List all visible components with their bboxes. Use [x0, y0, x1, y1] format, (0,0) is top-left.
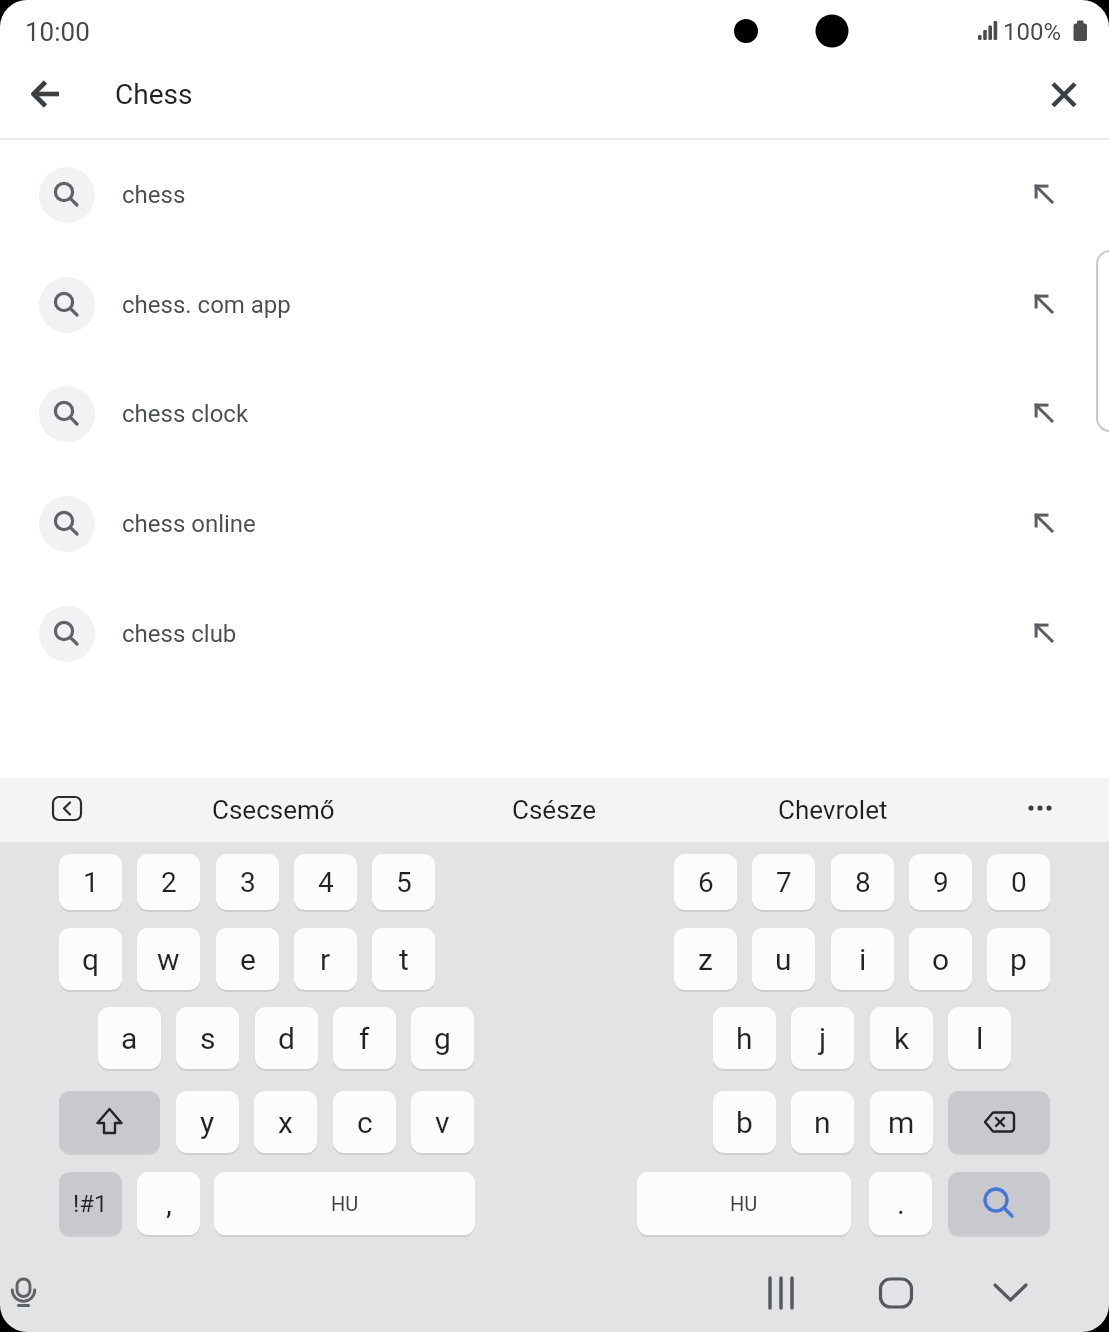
staticText: u	[775, 942, 792, 977]
staticText: 9	[933, 866, 949, 899]
button[interactable]	[1016, 788, 1064, 828]
staticText: Chess	[115, 78, 193, 111]
staticText: 1	[83, 866, 99, 899]
staticText: a	[121, 1021, 138, 1056]
staticText: chess. com app	[122, 291, 291, 319]
staticText: 10:00	[25, 17, 90, 47]
button[interactable]	[0, 360, 1109, 468]
button[interactable]: l	[948, 1007, 1011, 1069]
staticText: chess clock	[122, 400, 249, 428]
staticText: w	[157, 942, 180, 977]
staticText: v	[435, 1105, 450, 1140]
button[interactable]: i	[831, 928, 894, 990]
staticText: n	[814, 1105, 831, 1140]
button[interactable]: Csésze	[429, 780, 679, 840]
button[interactable]	[0, 251, 1109, 359]
button[interactable]: f	[333, 1007, 396, 1069]
button[interactable]: 0	[987, 854, 1050, 910]
staticText: 6	[698, 866, 714, 899]
button[interactable]: 3	[216, 854, 279, 910]
staticText: x	[278, 1105, 293, 1140]
button[interactable]: o	[909, 928, 972, 990]
button[interactable]: n	[791, 1091, 854, 1153]
button[interactable]: s	[176, 1007, 239, 1069]
button[interactable]: x	[254, 1091, 317, 1153]
staticText: z	[698, 942, 713, 977]
button[interactable]: Csecsemő	[148, 780, 398, 840]
button[interactable]: ,	[137, 1172, 200, 1235]
button[interactable]	[0, 470, 1109, 578]
staticText: q	[82, 942, 100, 977]
staticText: Chevrolet	[778, 795, 888, 825]
staticText: !#1	[73, 1190, 108, 1218]
staticText: s	[200, 1021, 216, 1056]
button[interactable]: 6	[674, 854, 737, 910]
button[interactable]: y	[176, 1091, 239, 1153]
staticText: 7	[776, 866, 792, 899]
staticText: h	[736, 1021, 753, 1056]
button[interactable]: g	[411, 1007, 474, 1069]
button[interactable]: z	[674, 928, 737, 990]
staticText: d	[278, 1021, 295, 1056]
button[interactable]: q	[59, 928, 122, 990]
button[interactable]	[948, 1091, 1050, 1153]
button[interactable]: Chevrolet	[708, 780, 958, 840]
button[interactable]: 9	[909, 854, 972, 910]
staticText: e	[240, 942, 256, 977]
button[interactable]	[59, 1091, 160, 1153]
button[interactable]: u	[752, 928, 815, 990]
staticText: c	[357, 1105, 373, 1140]
staticText: o	[932, 942, 950, 977]
staticText: k	[894, 1021, 910, 1056]
button[interactable]: w	[137, 928, 200, 990]
button[interactable]: HU	[214, 1172, 475, 1235]
button[interactable]: b	[713, 1091, 776, 1153]
button[interactable]	[866, 1263, 926, 1323]
staticText: 0	[1011, 866, 1027, 899]
staticText: HU	[730, 1192, 758, 1215]
button[interactable]	[0, 580, 1109, 688]
button[interactable]: d	[255, 1007, 318, 1069]
button[interactable]: !#1	[59, 1172, 122, 1235]
staticText: b	[736, 1105, 753, 1140]
button[interactable]: j	[791, 1007, 854, 1069]
staticText: Csésze	[512, 795, 597, 825]
button[interactable]	[0, 141, 1109, 249]
staticText: 5	[396, 866, 412, 899]
staticText: HU	[331, 1192, 359, 1215]
staticText: t	[399, 942, 409, 977]
button[interactable]	[1040, 70, 1088, 118]
button[interactable]: v	[411, 1091, 474, 1153]
button[interactable]	[948, 1172, 1050, 1235]
button[interactable]: 8	[831, 854, 894, 910]
staticText: .	[897, 1186, 905, 1221]
button[interactable]: t	[372, 928, 435, 990]
staticText: f	[359, 1021, 370, 1056]
button[interactable]: 4	[294, 854, 357, 910]
button[interactable]	[22, 70, 70, 118]
button[interactable]: 2	[137, 854, 200, 910]
button[interactable]	[3, 1268, 45, 1316]
button[interactable]: h	[713, 1007, 776, 1069]
button[interactable]: e	[216, 928, 279, 990]
staticText: 100%	[1003, 18, 1062, 46]
staticText: chess online	[122, 510, 256, 538]
button[interactable]	[47, 788, 87, 828]
button[interactable]: m	[870, 1091, 933, 1153]
button[interactable]: .	[869, 1172, 932, 1235]
button[interactable]: 7	[752, 854, 815, 910]
staticText: p	[1010, 942, 1027, 977]
staticText: m	[888, 1105, 915, 1140]
button[interactable]: r	[294, 928, 357, 990]
staticText: r	[320, 942, 331, 977]
button[interactable]	[751, 1263, 811, 1323]
button[interactable]: k	[870, 1007, 933, 1069]
button[interactable]: p	[987, 928, 1050, 990]
button[interactable]: 5	[372, 854, 435, 910]
staticText: g	[434, 1021, 451, 1056]
button[interactable]: c	[333, 1091, 396, 1153]
button[interactable]: a	[98, 1007, 161, 1069]
button[interactable]: HU	[637, 1172, 851, 1235]
button[interactable]	[980, 1263, 1040, 1323]
button[interactable]: 1	[59, 854, 122, 910]
